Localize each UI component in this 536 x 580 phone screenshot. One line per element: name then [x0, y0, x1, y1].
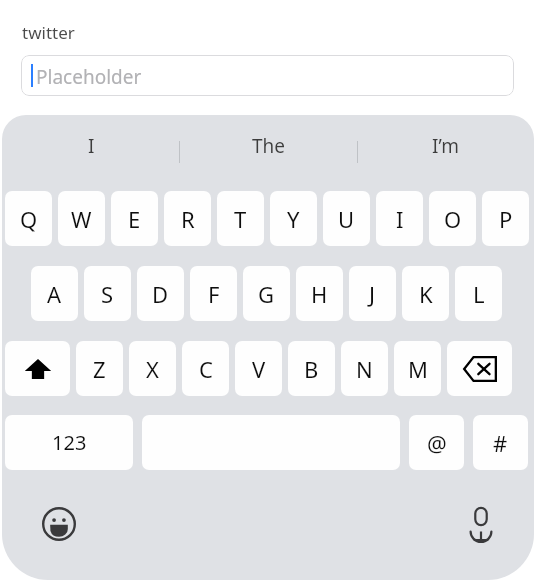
button[interactable]: L: [455, 266, 502, 321]
staticText: C: [199, 354, 213, 384]
button[interactable]: H: [296, 266, 343, 321]
staticText: J: [369, 279, 376, 309]
button[interactable]: T: [217, 191, 264, 246]
staticText: #: [493, 428, 508, 458]
button[interactable]: K: [402, 266, 449, 321]
button[interactable]: G: [243, 266, 290, 321]
button[interactable]: @: [409, 415, 464, 470]
staticText: O: [444, 204, 462, 234]
button[interactable]: E: [111, 191, 158, 246]
staticText: Q: [20, 204, 38, 234]
staticText: K: [419, 279, 433, 309]
button[interactable]: Z: [76, 341, 123, 396]
staticText: S: [101, 279, 114, 309]
staticText: L: [473, 279, 485, 309]
staticText: The: [252, 133, 286, 159]
staticText: I’m: [432, 133, 459, 159]
staticText: N: [356, 354, 373, 384]
button[interactable]: Shift: [5, 341, 70, 396]
staticText: P: [499, 204, 513, 234]
staticText: V: [252, 354, 266, 384]
staticText: X: [146, 354, 159, 384]
button[interactable]: I: [376, 191, 423, 246]
button[interactable]: O: [429, 191, 476, 246]
button[interactable]: The: [180, 115, 357, 177]
button[interactable]: Q: [5, 191, 52, 246]
button[interactable]: N: [341, 341, 388, 396]
button[interactable]: V: [235, 341, 282, 396]
staticText: F: [208, 279, 220, 309]
button[interactable]: J: [349, 266, 396, 321]
staticText: W: [71, 204, 92, 234]
button[interactable]: F: [190, 266, 237, 321]
staticText: I: [88, 133, 95, 159]
button[interactable]: I’m: [357, 115, 534, 177]
staticText: Y: [287, 204, 300, 234]
staticText: A: [47, 279, 62, 309]
button[interactable]: #: [473, 415, 528, 470]
button[interactable]: 123: [5, 415, 133, 470]
button[interactable]: A: [31, 266, 78, 321]
staticText: H: [311, 279, 328, 309]
button[interactable]: I: [2, 115, 180, 177]
staticText: E: [128, 204, 141, 234]
button[interactable]: R: [164, 191, 211, 246]
button[interactable]: Voice input: [454, 497, 508, 551]
staticText: I: [396, 204, 404, 234]
staticText: U: [338, 204, 355, 234]
button[interactable]: W: [58, 191, 105, 246]
button[interactable]: X: [129, 341, 176, 396]
button[interactable]: C: [182, 341, 229, 396]
button[interactable]: Placeholder: [21, 55, 514, 96]
staticText: B: [304, 354, 319, 384]
staticText: R: [181, 204, 195, 234]
staticText: Placeholder: [36, 64, 142, 90]
button[interactable]: B: [288, 341, 335, 396]
button[interactable]: Y: [270, 191, 317, 246]
button[interactable]: D: [137, 266, 184, 321]
staticText: @: [427, 428, 447, 458]
button[interactable]: U: [323, 191, 370, 246]
staticText: M: [408, 354, 428, 384]
staticText: twitter: [22, 21, 75, 44]
staticText: G: [258, 279, 275, 309]
button[interactable]: M: [394, 341, 441, 396]
button[interactable]: Backspace: [447, 341, 512, 396]
button[interactable]: Emoji keyboard: [32, 497, 86, 551]
button[interactable]: P: [482, 191, 529, 246]
button[interactable]: S: [84, 266, 131, 321]
staticText: T: [234, 204, 247, 234]
staticText: Z: [93, 354, 106, 384]
staticText: 123: [52, 429, 87, 456]
staticText: D: [152, 279, 169, 309]
